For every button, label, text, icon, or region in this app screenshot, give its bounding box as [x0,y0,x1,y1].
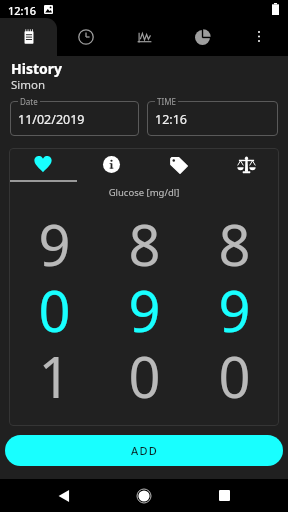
button[interactable]: Information [77,148,145,180]
button[interactable] [10,101,139,136]
button[interactable]: Back [44,479,84,512]
staticText: 9 [38,206,71,272]
button[interactable]: 0 [189,343,279,409]
staticText: Glucose [mg/dl] [9,186,279,199]
button[interactable]: 8 [99,211,189,277]
staticText: 8 [218,206,251,272]
staticText: 0 [38,272,71,338]
button[interactable]: Clock [67,18,105,56]
staticText: Simon [11,77,46,93]
staticText: 11/02/2019 [18,111,85,128]
button[interactable]: Weight [212,148,279,180]
button[interactable]: Heart rate [9,148,77,180]
button[interactable]: Tag [144,148,212,180]
button[interactable]: 0 [9,277,99,343]
button[interactable]: Recent apps [204,479,244,512]
button[interactable]: 1 [9,343,99,409]
button[interactable]: 0 [99,343,189,409]
button[interactable]: Statistics [183,18,221,56]
staticText: ADD [131,443,158,458]
button[interactable]: 9 [189,277,279,343]
staticText: Date [20,96,38,107]
button[interactable]: ADD [5,435,283,466]
staticText: 12:16 [155,111,187,128]
staticText: 0 [128,338,161,404]
button[interactable]: Notes [0,18,57,56]
button[interactable]: Home [124,479,164,512]
staticText: History [11,59,63,78]
button[interactable]: 9 [99,277,189,343]
staticText: 8 [128,206,161,272]
staticText: 1 [38,338,71,404]
staticText: 0 [218,338,251,404]
staticText: 12:16 [8,3,37,18]
staticText: 9 [128,272,161,338]
button[interactable]: Chart [125,18,163,56]
button[interactable]: More options [239,18,279,56]
button[interactable] [147,101,278,136]
staticText: 9 [218,272,251,338]
staticText: TIME [157,96,176,107]
button[interactable]: 8 [189,211,279,277]
button[interactable]: 9 [9,211,99,277]
